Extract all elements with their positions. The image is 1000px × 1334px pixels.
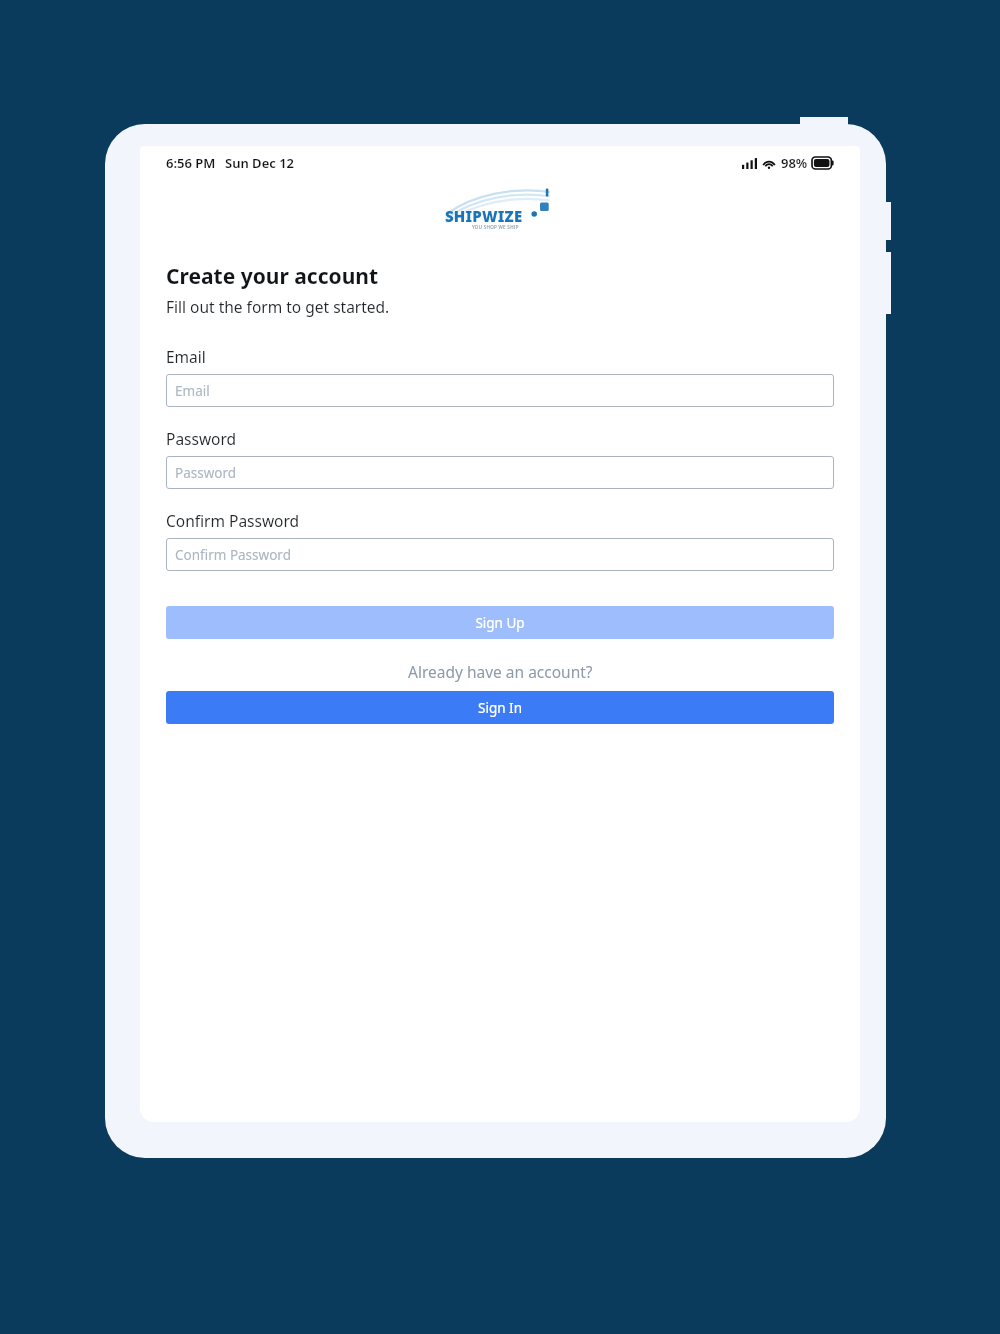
staticText: YOU SHOP WE SHIP xyxy=(472,224,519,230)
staticText: Password xyxy=(166,428,237,449)
other: Shipwize logo xyxy=(442,186,558,236)
staticText: Email xyxy=(175,382,210,400)
staticText: 98% xyxy=(781,154,808,172)
button[interactable]: Email xyxy=(166,374,834,407)
staticText: Create your account xyxy=(166,262,379,291)
staticText: Confirm Password xyxy=(166,510,300,531)
button[interactable]: Sign Up xyxy=(166,606,834,639)
staticText: Confirm Password xyxy=(175,546,291,564)
button[interactable]: Password xyxy=(166,456,834,489)
staticText: Sun Dec 12 xyxy=(225,154,295,172)
staticText: Already have an account? xyxy=(408,661,593,682)
staticText: Email xyxy=(166,346,206,367)
staticText: SHIPWIZE xyxy=(445,206,523,226)
staticText: Sign In xyxy=(478,699,522,717)
staticText: Fill out the form to get started. xyxy=(166,296,390,317)
button[interactable]: Sign In xyxy=(166,691,834,724)
staticText: Sign Up xyxy=(475,614,525,632)
staticText: Password xyxy=(175,464,237,482)
staticText: 6:56 PM xyxy=(166,154,216,172)
button[interactable]: Confirm Password xyxy=(166,538,834,571)
